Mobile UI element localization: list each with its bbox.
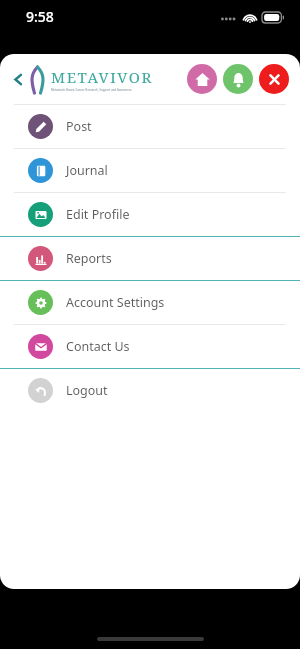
button[interactable]: Home: [187, 64, 217, 94]
staticText: METAVIVOR: [51, 67, 153, 87]
button[interactable]: Post: [0, 105, 300, 148]
button[interactable]: Reports: [0, 237, 300, 280]
staticText: Contact Us: [66, 338, 130, 355]
staticText: Post: [66, 118, 92, 135]
button[interactable]: Logout: [0, 369, 300, 412]
staticText: Account Settings: [66, 294, 165, 311]
button[interactable]: Notifications: [223, 64, 253, 94]
staticText: Edit Profile: [66, 206, 130, 223]
staticText: Metastatic Breast Cancer Research, Suppo…: [51, 88, 132, 92]
button[interactable]: Journal: [0, 149, 300, 192]
staticText: 9:58: [26, 7, 54, 26]
button[interactable]: Close: [259, 64, 289, 94]
button[interactable]: Account Settings: [0, 281, 300, 324]
button[interactable]: Contact Us: [0, 325, 300, 368]
button[interactable]: Back: [8, 69, 28, 89]
staticText: Journal: [66, 162, 108, 179]
staticText: Reports: [66, 250, 112, 267]
button[interactable]: Edit Profile: [0, 193, 300, 236]
staticText: Logout: [66, 382, 108, 399]
